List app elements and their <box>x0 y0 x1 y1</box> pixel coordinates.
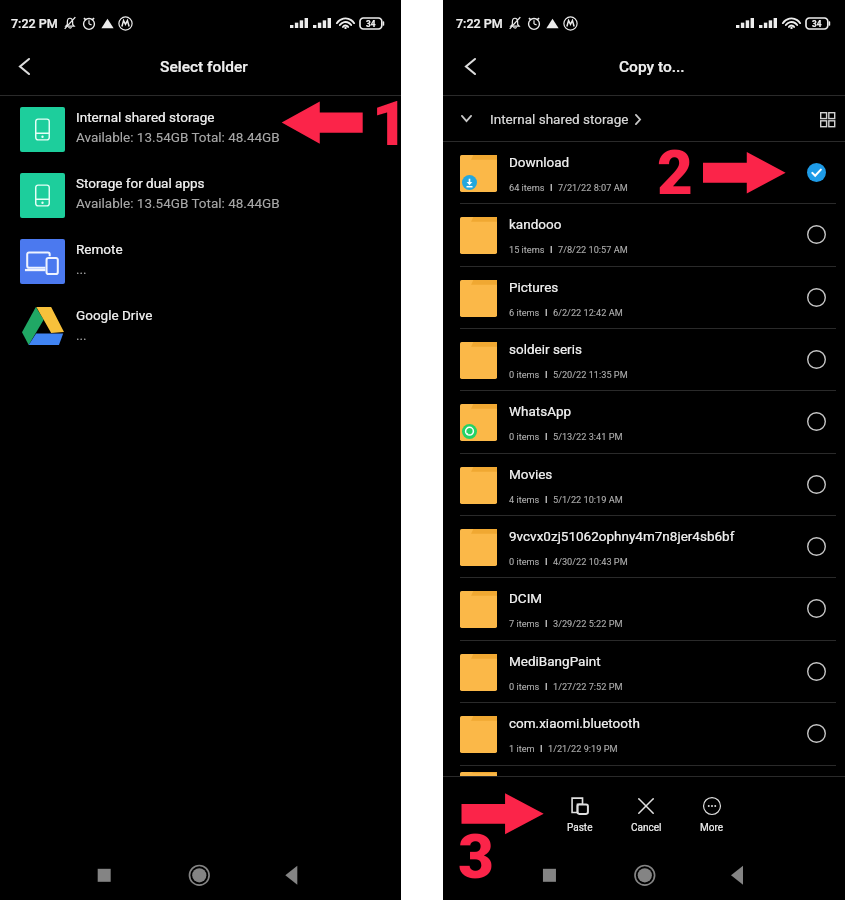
staticText: 4 items <box>509 494 540 505</box>
staticText: I <box>545 618 548 629</box>
button[interactable]: Select <box>787 329 845 391</box>
button[interactable]: Remote <box>0 228 401 294</box>
button[interactable]: Select <box>787 641 845 703</box>
button[interactable]: soldeir seris <box>443 329 845 391</box>
staticText: MediBangPaint <box>509 653 601 669</box>
button[interactable]: Selected <box>787 142 845 204</box>
staticText: 0 items <box>509 556 540 567</box>
button[interactable]: Back <box>0 42 45 95</box>
button[interactable]: Internal shared storage <box>0 96 401 162</box>
button[interactable]: com.xiaomi.bluetooth <box>443 703 845 766</box>
button[interactable]: Paste <box>547 797 613 834</box>
staticText: DCIM <box>509 590 543 606</box>
staticText: 0 items <box>509 369 540 380</box>
staticText: 1 <box>372 87 408 160</box>
staticText: Available: 13.54GB Total: 48.44GB <box>76 129 280 145</box>
staticText: 15 items <box>509 244 545 255</box>
staticText: I <box>545 307 548 318</box>
staticText: 1/21/22 9:19 PM <box>548 743 618 754</box>
staticText: Remote <box>76 241 123 257</box>
staticText: Copy to... <box>619 58 685 76</box>
staticText: Pictures <box>509 279 559 295</box>
staticText: ... <box>76 327 87 343</box>
button[interactable] <box>443 766 845 776</box>
button[interactable]: Download <box>443 142 845 204</box>
button[interactable]: Select <box>787 454 845 516</box>
button[interactable]: DCIM <box>443 578 845 641</box>
button[interactable]: 9vcvx0zj51062ophny4m7n8jer4sb6bf <box>443 516 845 578</box>
staticText: 34 <box>812 19 822 29</box>
staticText: 6 items <box>509 307 540 318</box>
button[interactable]: Cancel <box>613 797 679 834</box>
staticText: 2 <box>657 136 693 209</box>
staticText: 5/13/22 3:41 PM <box>553 431 623 442</box>
staticText: 3 <box>458 820 494 893</box>
staticText: I <box>550 182 553 193</box>
button[interactable]: Grid view <box>807 96 845 141</box>
staticText: com.xiaomi.bluetooth <box>509 715 640 731</box>
staticText: 7:22 PM <box>11 16 58 31</box>
button[interactable]: More <box>679 797 745 834</box>
staticText: Paste <box>567 822 593 834</box>
button[interactable]: Select <box>787 267 845 329</box>
staticText: 1 item <box>509 743 535 754</box>
button[interactable]: Back <box>444 42 490 95</box>
button[interactable]: Select <box>787 516 845 578</box>
staticText: ... <box>76 261 87 277</box>
button[interactable]: Select <box>787 578 845 641</box>
staticText: I <box>545 494 548 505</box>
staticText: WhatsApp <box>509 403 572 419</box>
staticText: I <box>540 743 543 754</box>
button[interactable]: Google Drive <box>0 294 401 360</box>
button[interactable]: Select <box>787 204 845 267</box>
staticText: I <box>545 369 548 380</box>
button[interactable]: Movies <box>443 454 845 516</box>
staticText: 64 items <box>509 182 545 193</box>
staticText: kandooo <box>509 216 562 232</box>
button[interactable]: Select <box>787 703 845 766</box>
staticText: Select folder <box>160 58 248 76</box>
staticText: 4/30/22 10:43 PM <box>553 556 628 567</box>
staticText: 5/20/22 11:35 PM <box>553 369 628 380</box>
staticText: Cancel <box>631 822 662 834</box>
button[interactable]: WhatsApp <box>443 391 845 454</box>
staticText: 7 items <box>509 618 540 629</box>
button[interactable]: MediBangPaint <box>443 641 845 703</box>
button[interactable]: Internal shared storage <box>490 111 641 127</box>
staticText: 7:22 PM <box>456 16 503 31</box>
staticText: I <box>545 431 548 442</box>
staticText: More <box>700 822 724 834</box>
staticText: 3/29/22 5:22 PM <box>553 618 623 629</box>
button[interactable]: Select <box>787 391 845 454</box>
staticText: 5/1/22 10:19 AM <box>553 494 623 505</box>
staticText: 0 items <box>509 681 540 692</box>
staticText: I <box>545 556 548 567</box>
staticText: Google Drive <box>76 307 153 323</box>
button[interactable]: Storage for dual apps <box>0 162 401 228</box>
staticText: 7/21/22 8:07 AM <box>558 182 628 193</box>
staticText: Download <box>509 154 570 170</box>
staticText: Internal shared storage <box>76 109 215 125</box>
staticText: 6/2/22 12:42 AM <box>553 307 623 318</box>
staticText: 1/27/22 7:52 PM <box>553 681 623 692</box>
staticText: 0 items <box>509 431 540 442</box>
staticText: soldeir seris <box>509 341 582 357</box>
button[interactable]: Collapse <box>443 96 490 141</box>
staticText: Storage for dual apps <box>76 175 205 191</box>
staticText: Available: 13.54GB Total: 48.44GB <box>76 195 280 211</box>
staticText: Movies <box>509 466 553 482</box>
staticText: I <box>545 681 548 692</box>
staticText: Internal shared storage <box>490 111 629 127</box>
button[interactable]: kandooo <box>443 204 845 267</box>
staticText: 7/8/22 10:57 AM <box>558 244 628 255</box>
staticText: I <box>550 244 553 255</box>
staticText: 9vcvx0zj51062ophny4m7n8jer4sb6bf <box>509 528 735 544</box>
button[interactable]: Pictures <box>443 267 845 329</box>
staticText: 34 <box>366 19 376 29</box>
